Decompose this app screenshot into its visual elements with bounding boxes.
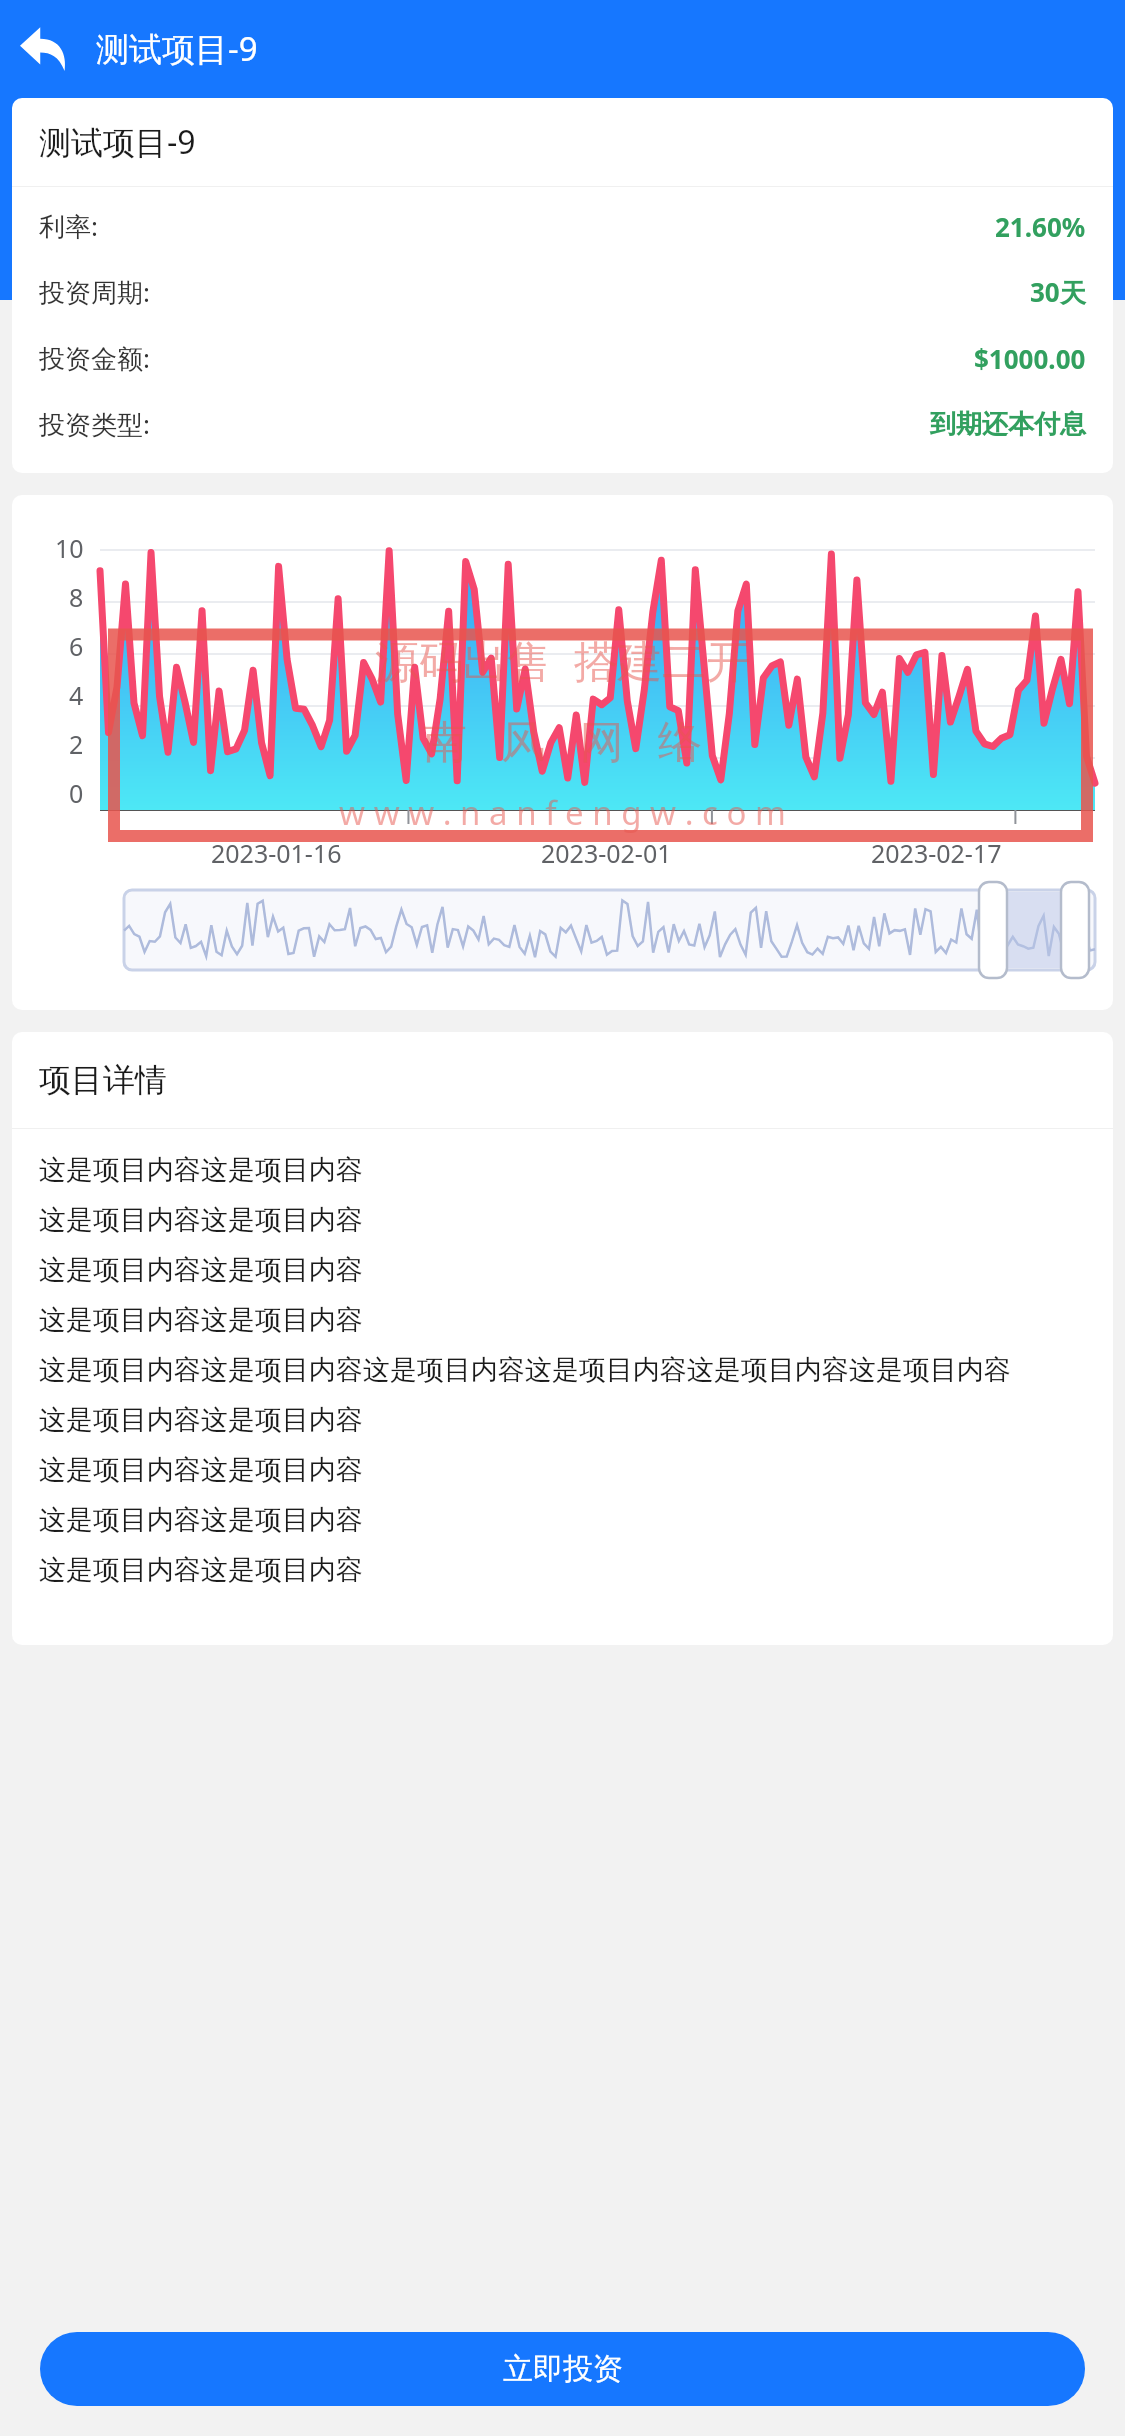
staticText: 这是项目内容这是项目内容这是项目内容这是项目内容这是项目内容这是项目内容 — [39, 1353, 1011, 1387]
staticText: w w w . n a n f e n g w . c o m — [339, 790, 786, 835]
staticText: 这是项目内容这是项目内容 — [39, 1153, 363, 1187]
staticText: 2023-02-01 — [541, 836, 672, 870]
button[interactable]: 投资周期: — [39, 259, 1086, 325]
staticText: 源码出售 搭建二开 — [375, 630, 750, 690]
staticText: 2023-02-17 — [871, 836, 1002, 870]
staticText: 到期还本付息 — [930, 408, 1086, 441]
staticText: 6 — [69, 629, 84, 663]
button[interactable]: 利率: — [39, 193, 1086, 259]
staticText: 这是项目内容这是项目内容 — [39, 1453, 363, 1487]
staticText: 利率: — [39, 208, 98, 244]
staticText: 测试项目-9 — [39, 120, 196, 164]
staticText: 0 — [69, 776, 84, 810]
button[interactable]: Back — [10, 15, 76, 81]
staticText: 投资类型: — [39, 406, 150, 442]
staticText: 立即投资 — [503, 2350, 623, 2388]
button[interactable]: 投资金额: — [39, 325, 1086, 391]
staticText: 这是项目内容这是项目内容 — [39, 1553, 363, 1587]
staticText: 21.60% — [995, 209, 1086, 244]
staticText: 8 — [69, 580, 84, 614]
staticText: 这是项目内容这是项目内容 — [39, 1253, 363, 1287]
staticText: 10 — [55, 531, 84, 565]
staticText: 项目详情 — [39, 1060, 167, 1100]
staticText: 2 — [69, 727, 84, 761]
staticText: 这是项目内容这是项目内容 — [39, 1503, 363, 1537]
button[interactable]: 投资类型: — [39, 391, 1086, 457]
staticText: 这是项目内容这是项目内容 — [39, 1303, 363, 1337]
staticText: 这是项目内容这是项目内容 — [39, 1403, 363, 1437]
staticText: 投资金额: — [39, 340, 150, 376]
button[interactable]: 立即投资 — [40, 2332, 1085, 2406]
staticText: $1000.00 — [974, 341, 1086, 376]
staticText: 4 — [69, 678, 84, 712]
staticText: 2023-01-16 — [211, 836, 342, 870]
staticText: 这是项目内容这是项目内容 — [39, 1203, 363, 1237]
staticText: 投资周期: — [39, 274, 150, 310]
staticText: 测试项目-9 — [96, 26, 258, 71]
staticText: 30天 — [1030, 274, 1086, 310]
staticText: 南 风 网 络 — [423, 710, 702, 770]
